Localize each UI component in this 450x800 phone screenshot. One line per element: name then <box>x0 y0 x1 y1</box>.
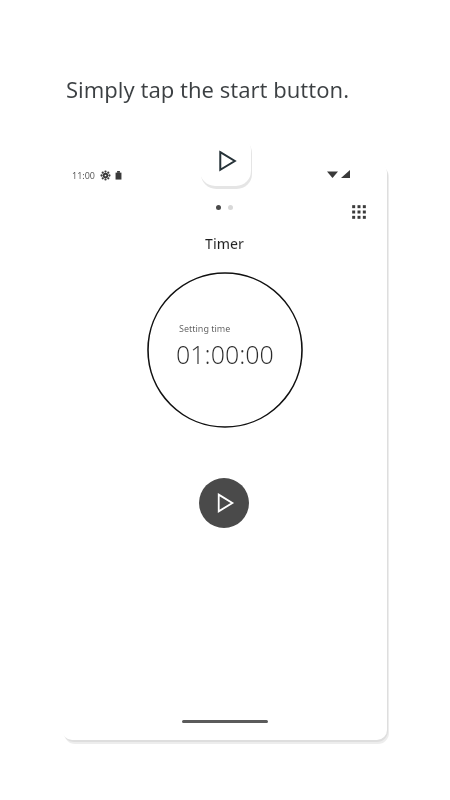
staticText: Timer <box>205 234 244 253</box>
staticText: Setting time <box>179 322 231 334</box>
staticText: 01:00:00 <box>176 337 274 371</box>
button[interactable]: Start button highlight <box>200 135 251 186</box>
staticText: Simply tap the start button. <box>66 74 350 104</box>
button[interactable]: Apps <box>345 198 373 226</box>
staticText: 11:00 <box>72 169 96 181</box>
button[interactable]: Start <box>199 478 249 528</box>
